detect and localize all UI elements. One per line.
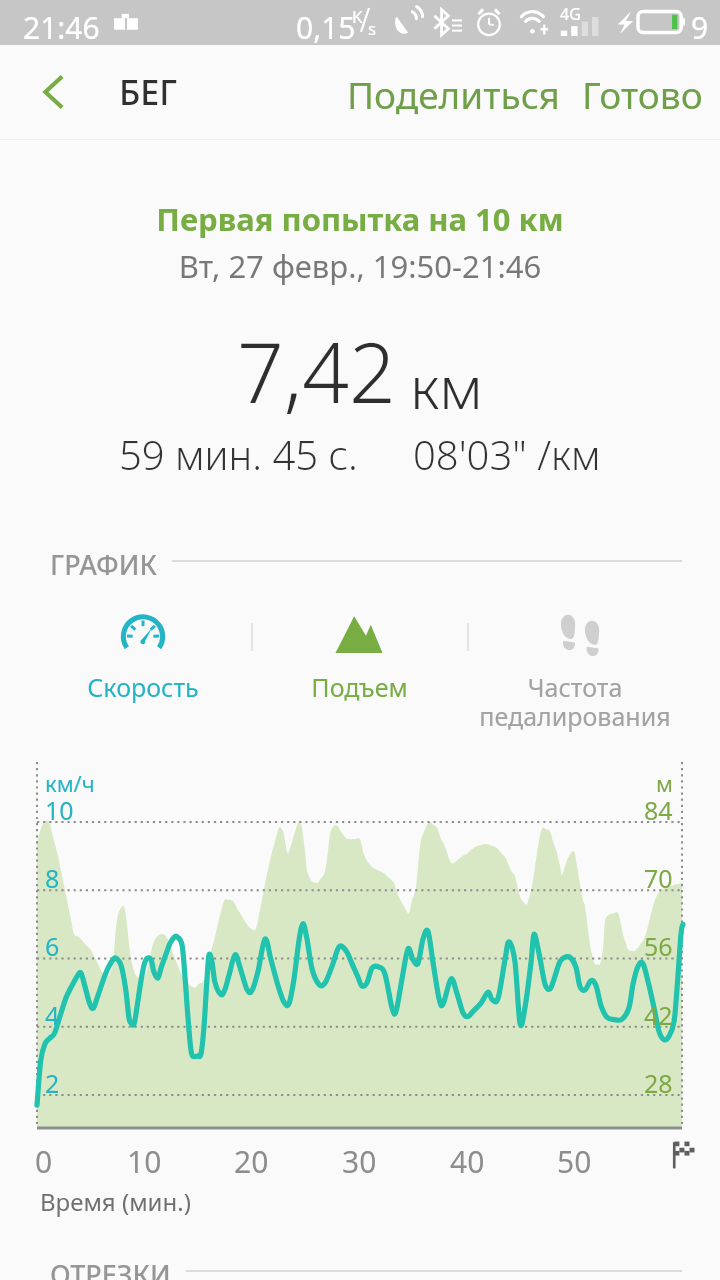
staticText: БЕГ (119, 69, 178, 115)
button[interactable]: Back (0, 45, 104, 139)
staticText: K (352, 5, 363, 28)
staticText: Время (мин.) (40, 1185, 191, 1218)
staticText: км (410, 346, 483, 426)
staticText: 50 (557, 1141, 592, 1182)
staticText: 84 (644, 793, 673, 827)
staticText: 21:46 (23, 7, 100, 48)
staticText: 70 (644, 861, 673, 895)
staticText: 56 (644, 929, 673, 963)
staticText: 10 (127, 1141, 162, 1182)
button[interactable]: Поделиться (331, 45, 576, 139)
staticText: 0,15 (296, 7, 356, 48)
staticText: Вт, 27 февр., 19:50-21:46 (0, 245, 720, 287)
button[interactable]: Подъем (251, 598, 467, 704)
staticText: 7,42 (237, 315, 396, 427)
staticText: 6 (45, 929, 60, 963)
staticText: м (656, 768, 673, 798)
staticText: 59 мин. 45 с. (119, 427, 358, 481)
staticText: Скорость (87, 670, 199, 704)
staticText: км/ч (45, 768, 95, 798)
staticText: 8 (45, 861, 60, 895)
button[interactable]: Готово (566, 45, 720, 139)
staticText: 10 (45, 793, 74, 827)
staticText: 20 (234, 1141, 269, 1182)
staticText: Готово (582, 69, 703, 115)
staticText: s (368, 17, 377, 40)
staticText: 0 (35, 1141, 53, 1182)
staticText: 28 (644, 1066, 673, 1100)
staticText: 42 (644, 998, 673, 1032)
staticText: Поделиться (347, 69, 560, 115)
staticText: ОТРЕЗКИ (50, 1256, 171, 1280)
staticText: 2 (45, 1066, 60, 1100)
staticText: 4 (45, 998, 60, 1032)
staticText: Первая попытка на 10 км (0, 198, 720, 240)
staticText: Подъем (311, 670, 408, 704)
button[interactable]: БЕГ (103, 45, 194, 139)
staticText: 40 (450, 1141, 485, 1182)
staticText: ГРАФИК (50, 546, 157, 576)
staticText: 9 (691, 7, 709, 48)
staticText: 4G (560, 3, 581, 25)
button[interactable]: Частота педалирования (467, 598, 683, 733)
staticText: 30 (342, 1141, 377, 1182)
button[interactable]: Скорость (35, 598, 251, 704)
staticText: 08'03" /км (413, 427, 601, 481)
staticText: Частота педалирования (479, 670, 671, 733)
